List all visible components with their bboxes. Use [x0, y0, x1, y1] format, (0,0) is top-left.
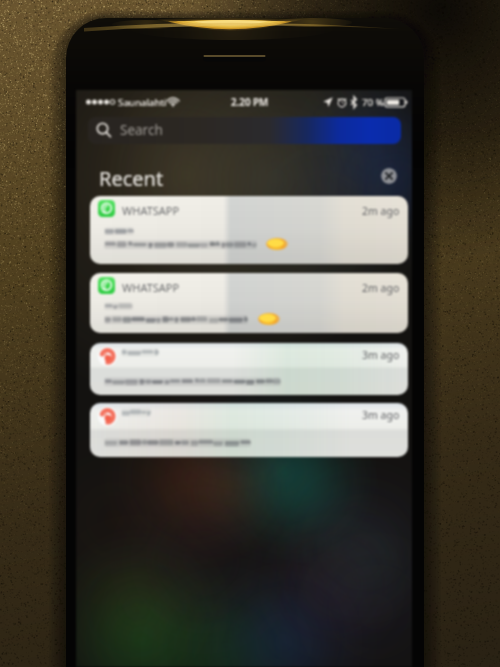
button[interactable]: 3m ago: [90, 403, 408, 457]
staticText: 3m ago: [362, 348, 400, 362]
button[interactable]: 3m ago: [90, 343, 408, 395]
staticText: Search: [120, 121, 163, 139]
staticText: Saunalahti: [118, 96, 167, 109]
button[interactable]: WHATSAPP: [90, 273, 408, 333]
staticText: 3m ago: [362, 408, 400, 422]
button[interactable]: Clear all notifications: [381, 168, 397, 184]
staticText: 2.20 PM: [231, 96, 269, 109]
staticText: WHATSAPP: [122, 280, 180, 295]
staticText: 2m ago: [362, 204, 400, 218]
staticText: WHATSAPP: [122, 203, 180, 218]
staticText: 2m ago: [362, 281, 400, 295]
staticText: Recent: [99, 165, 164, 192]
button[interactable]: Search: [88, 117, 401, 144]
staticText: 70 %: [362, 96, 384, 109]
button[interactable]: WHATSAPP: [90, 196, 408, 264]
